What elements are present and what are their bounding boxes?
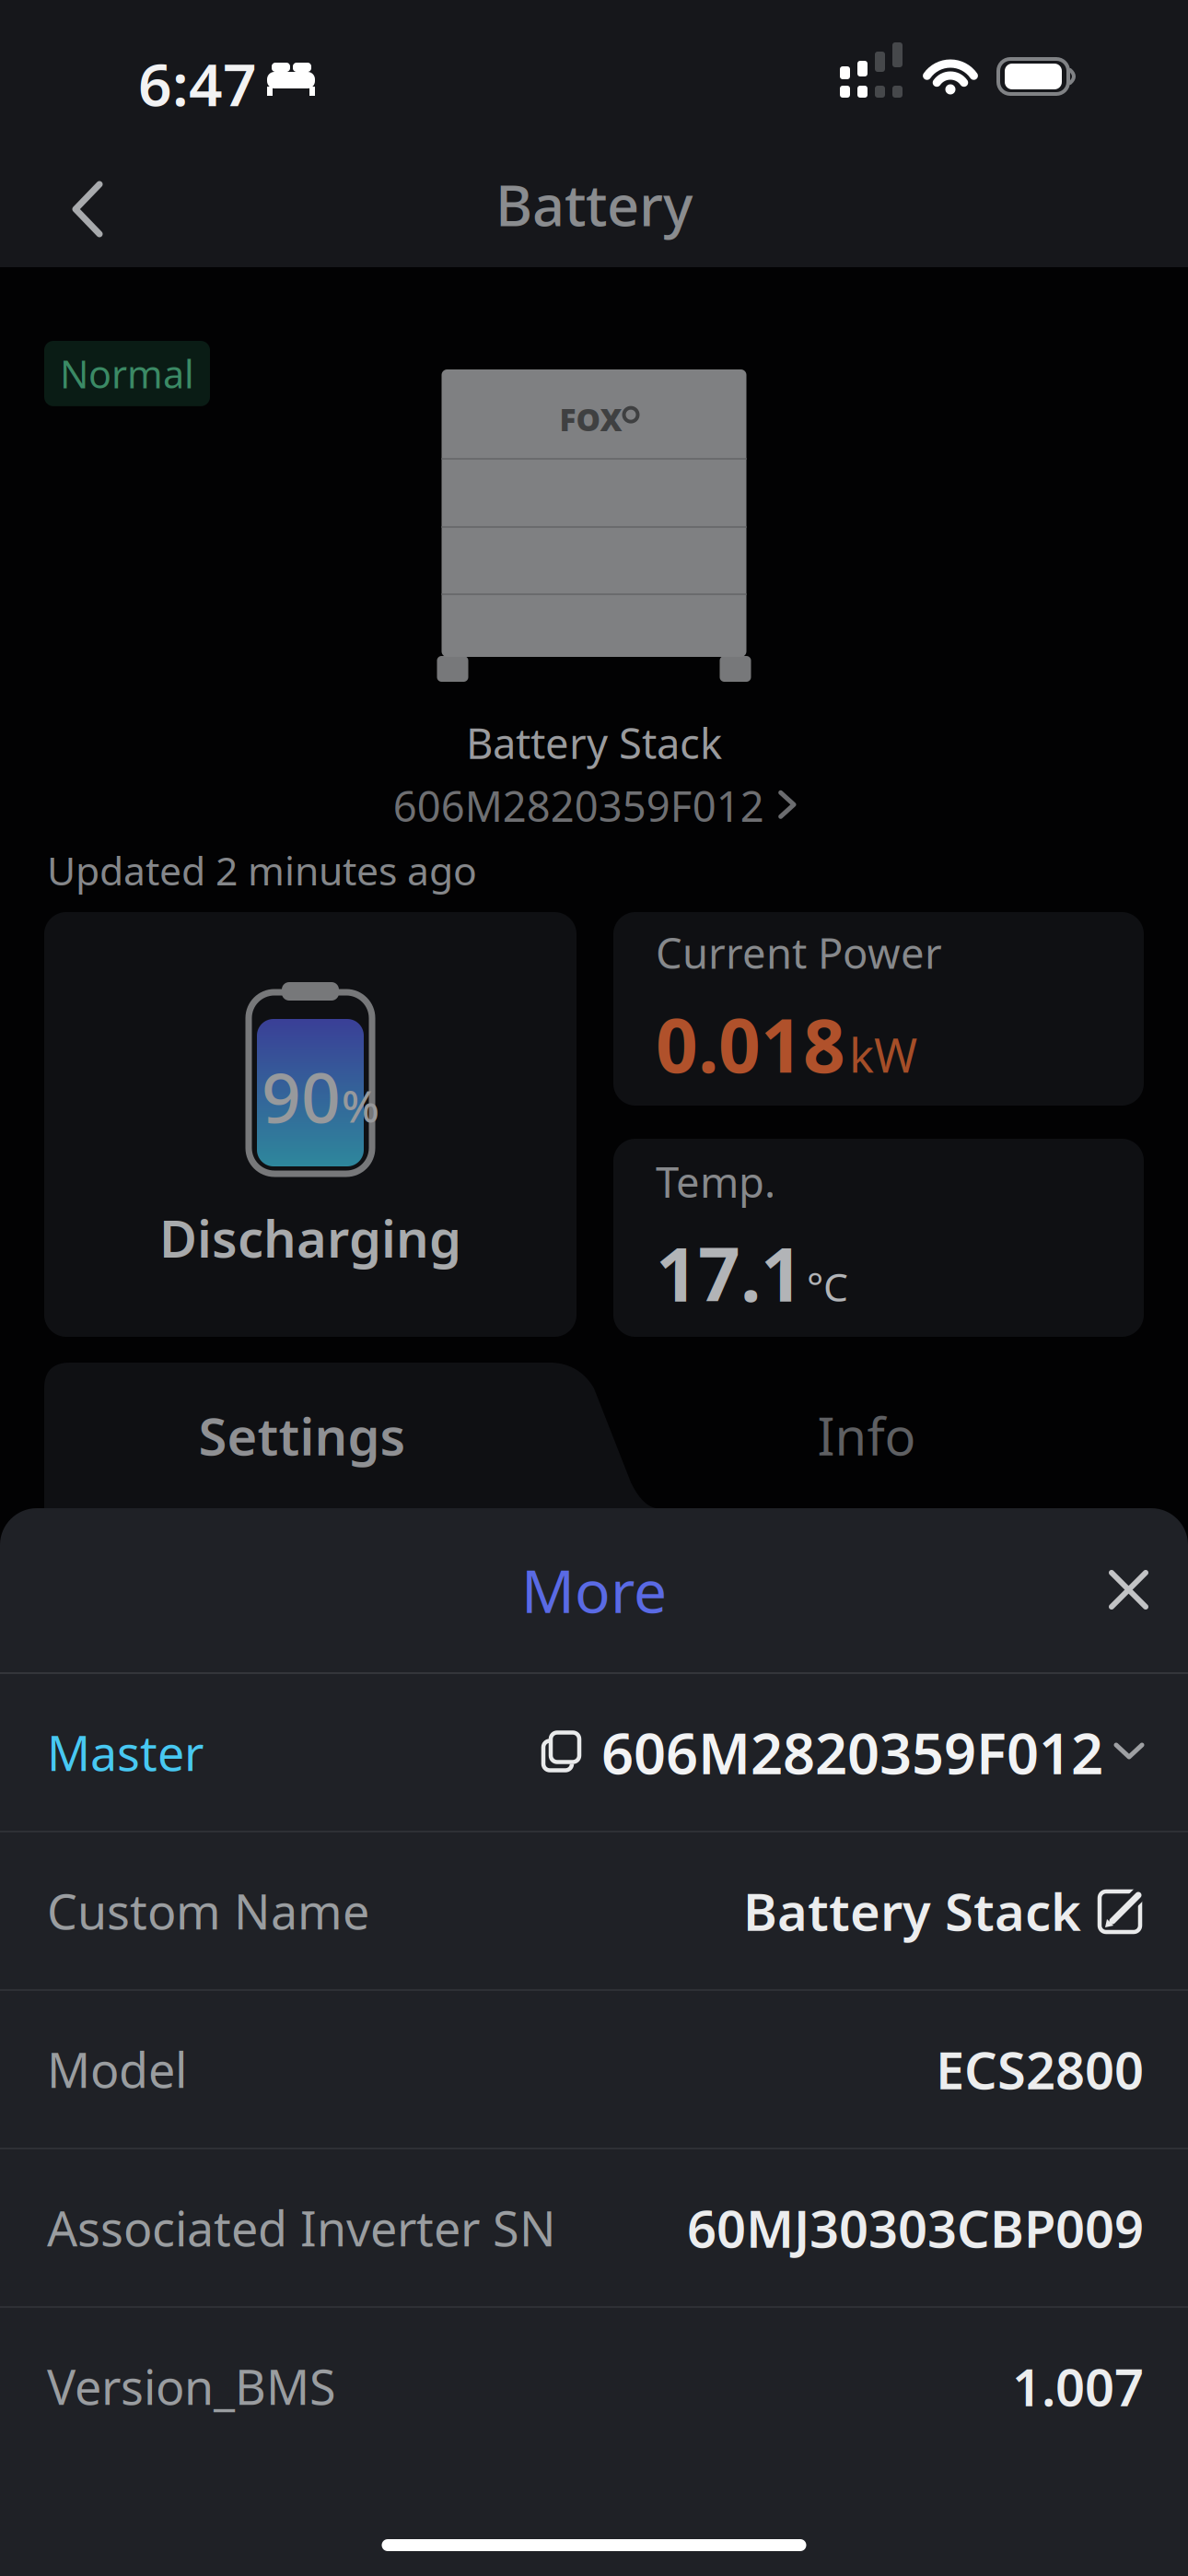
staticText: More — [521, 1551, 667, 1629]
staticText: FOX — [559, 399, 622, 440]
staticText: Normal — [60, 348, 194, 399]
staticText: Settings — [198, 1401, 406, 1470]
staticText: 0.018 — [656, 995, 845, 1093]
button[interactable]: Edit name — [1100, 1889, 1144, 1933]
staticText: Custom Name — [47, 1879, 369, 1943]
staticText: Battery Stack — [466, 715, 722, 770]
button[interactable]: Info — [682, 1363, 1051, 1508]
button[interactable]: 606M2820359F012 — [601, 1715, 1144, 1790]
staticText: 606M2820359F012 — [393, 778, 764, 833]
staticText: °C — [807, 1260, 848, 1312]
staticText: Associated Inverter SN — [47, 2196, 556, 2260]
staticText: Updated 2 minutes ago — [47, 844, 477, 896]
staticText: % — [342, 1076, 379, 1135]
staticText: Info — [817, 1401, 916, 1470]
staticText: 606M2820359F012 — [601, 1715, 1103, 1790]
staticText: Version_BMS — [47, 2354, 336, 2418]
staticText: Battery Stack — [743, 1877, 1081, 1945]
staticText: Discharging — [159, 1203, 461, 1272]
staticText: Battery — [495, 167, 693, 242]
staticText: 60MJ30303CBP009 — [687, 2193, 1144, 2262]
staticText: Master — [47, 1721, 204, 1784]
staticText: kW — [849, 1023, 917, 1085]
staticText: 1.007 — [1012, 2352, 1144, 2420]
staticText: 6:47 — [138, 44, 257, 123]
button[interactable]: Copy serial number — [543, 1733, 581, 1772]
staticText: Model — [47, 2037, 187, 2101]
staticText: 17.1 — [656, 1224, 803, 1322]
button[interactable]: Close — [1099, 1560, 1159, 1621]
button[interactable]: 606M2820359F012 — [393, 778, 795, 833]
staticText: Temp. — [656, 1154, 775, 1209]
staticText: 90 — [262, 1050, 341, 1142]
staticText: ECS2800 — [936, 2035, 1144, 2104]
button[interactable]: Back — [57, 166, 120, 254]
staticText: Current Power — [656, 925, 942, 980]
button[interactable]: Settings — [44, 1363, 560, 1508]
